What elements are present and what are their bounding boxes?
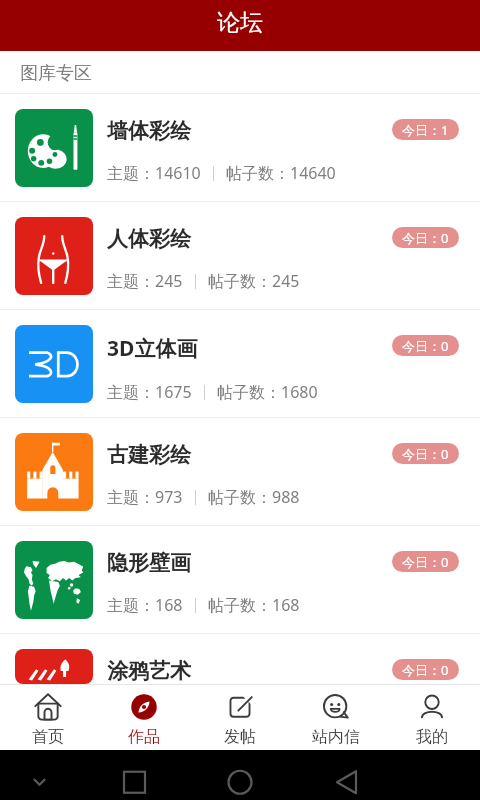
staticText: 主题：245 <box>107 270 183 292</box>
staticText: 论坛 <box>217 8 263 37</box>
button[interactable]: 涂鸦艺术 <box>0 634 480 684</box>
staticText: 作品 <box>128 727 160 747</box>
staticText: 主题：973 <box>107 486 183 508</box>
staticText: 帖子数：168 <box>208 594 300 616</box>
staticText: 今日：1 <box>402 121 449 139</box>
staticText: 主题：168 <box>107 594 183 616</box>
staticText: 今日：0 <box>402 661 449 679</box>
staticText: 帖子数：988 <box>208 486 300 508</box>
button[interactable]: 发帖 <box>192 685 288 750</box>
staticText: 墙体彩绘 <box>107 118 191 144</box>
button[interactable]: 人体彩绘 <box>0 202 480 309</box>
staticText: 帖子数：1680 <box>217 381 318 403</box>
staticText: 隐形壁画 <box>107 550 191 576</box>
staticText: 古建彩绘 <box>107 442 191 468</box>
staticText: 主题：1675 <box>107 381 192 403</box>
staticText: 站内信 <box>312 727 360 747</box>
button[interactable]: 站内信 <box>288 685 384 750</box>
staticText: 我的 <box>416 727 448 747</box>
button[interactable]: 我的 <box>384 685 480 750</box>
staticText: 发帖 <box>224 727 256 747</box>
staticText: 帖子数：14640 <box>226 162 336 184</box>
button[interactable]: 作品 <box>96 685 192 750</box>
staticText: 今日：0 <box>402 445 449 463</box>
staticText: 涂鸦艺术 <box>107 658 191 684</box>
staticText: 帖子数：245 <box>208 270 300 292</box>
staticText: 今日：0 <box>402 553 449 571</box>
staticText: 主题：14610 <box>107 162 201 184</box>
button[interactable]: 3D立体画 <box>0 310 480 417</box>
staticText: 今日：0 <box>402 337 449 355</box>
staticText: 人体彩绘 <box>107 226 191 252</box>
staticText: 首页 <box>32 727 64 747</box>
button[interactable]: 古建彩绘 <box>0 418 480 525</box>
staticText: 今日：0 <box>402 229 449 247</box>
button[interactable]: 首页 <box>0 685 96 750</box>
button[interactable]: 隐形壁画 <box>0 526 480 633</box>
staticText: 图库专区 <box>20 62 92 85</box>
button[interactable]: 墙体彩绘 <box>0 94 480 201</box>
staticText: 3D立体画 <box>107 334 198 363</box>
